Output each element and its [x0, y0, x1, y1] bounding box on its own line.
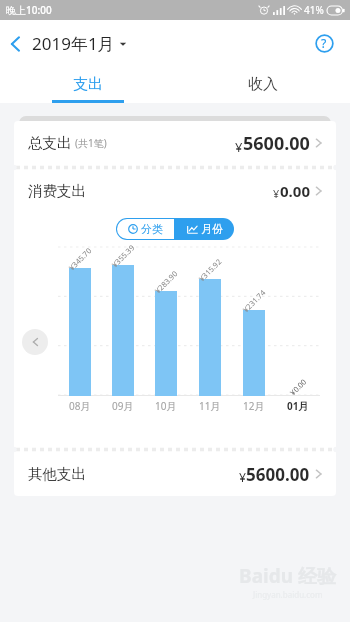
staticText: 0.00	[280, 181, 310, 201]
staticText: ¥355.39	[110, 243, 136, 269]
staticText: ?	[321, 35, 327, 51]
staticText: 12月	[243, 399, 265, 413]
other: Back	[10, 35, 21, 53]
staticText: 01月	[287, 399, 309, 413]
button[interactable]: Back	[0, 26, 135, 61]
button[interactable]: 分类	[117, 219, 174, 239]
button[interactable]: 消费支出	[14, 170, 336, 211]
staticText: 晚上10:00	[6, 3, 52, 17]
button[interactable]: 总支出	[14, 121, 336, 165]
staticText: 支出	[73, 75, 103, 94]
staticText: 月份	[201, 222, 223, 236]
staticText: 08月	[69, 399, 91, 413]
button[interactable]: 收入	[175, 66, 350, 103]
staticText: ¥315.92	[197, 257, 223, 283]
staticText: 分类	[141, 222, 163, 236]
button[interactable]: 月份	[175, 218, 234, 240]
button[interactable]: 其他支出	[14, 452, 336, 496]
staticText: Baidu 经验	[239, 563, 336, 589]
staticText: ¥	[273, 186, 280, 201]
staticText: ¥0.00	[287, 376, 309, 398]
staticText: ¥	[235, 138, 243, 156]
button[interactable]: Previous months	[22, 329, 48, 355]
staticText: 总支出	[28, 134, 72, 152]
staticText: 09月	[112, 399, 134, 413]
staticText: 41%	[304, 3, 324, 17]
button[interactable]: 支出	[0, 66, 175, 103]
staticText: 其他支出	[28, 465, 86, 483]
staticText: ¥231.74	[241, 288, 267, 314]
staticText: 5600.00	[246, 463, 310, 486]
staticText: 2019年1月	[32, 32, 115, 55]
staticText: 收入	[248, 75, 278, 94]
staticText: 5600.00	[243, 131, 310, 156]
staticText: ¥345.70	[67, 246, 93, 272]
staticText: 10月	[155, 399, 177, 413]
staticText: 消费支出	[28, 182, 86, 200]
staticText: Jingyan.baidu.com	[253, 589, 323, 600]
button[interactable]: Help	[312, 31, 336, 55]
staticText: ¥	[239, 469, 246, 486]
staticText: ¥283.90	[153, 269, 179, 295]
staticText: (共1笔)	[75, 136, 107, 150]
staticText: 11月	[199, 399, 221, 413]
